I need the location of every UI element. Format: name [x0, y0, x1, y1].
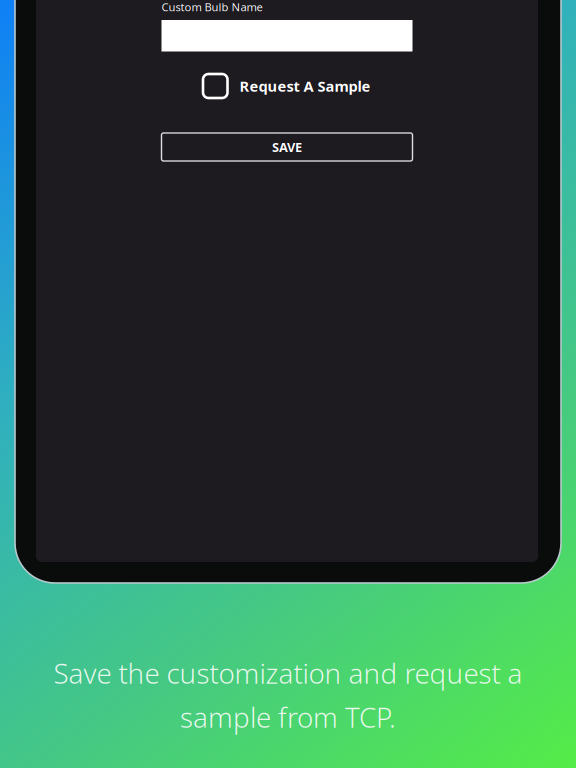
button[interactable]: SAVE: [161, 133, 412, 161]
button[interactable]: Request A Sample: [203, 73, 413, 99]
staticText: Save the customization and request a: [53, 654, 522, 692]
button[interactable]: Custom Bulb Name text field: [161, 20, 412, 51]
staticText: sample from TCP.: [180, 698, 396, 736]
staticText: Custom Bulb Name: [161, 0, 262, 15]
staticText: Request A Sample: [239, 76, 370, 96]
staticText: SAVE: [272, 138, 302, 156]
